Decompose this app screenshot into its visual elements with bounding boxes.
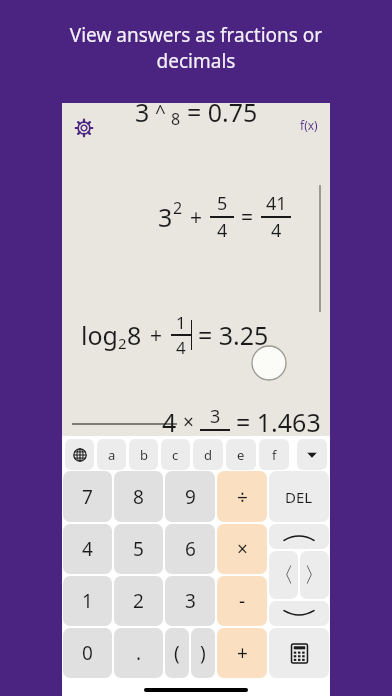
button[interactable]: × bbox=[217, 524, 267, 574]
staticText: d bbox=[204, 446, 212, 464]
staticText: = 1.463 bbox=[236, 405, 321, 439]
button[interactable]: f(x) bbox=[296, 115, 322, 135]
staticText: 4 bbox=[82, 536, 93, 562]
staticText: f(x) bbox=[300, 117, 318, 133]
staticText: 1 bbox=[176, 311, 186, 334]
staticText: 2 bbox=[173, 197, 183, 219]
staticText: 6 bbox=[185, 536, 196, 562]
button[interactable]: 6 bbox=[165, 524, 215, 574]
button[interactable]: 1 bbox=[63, 576, 112, 626]
staticText: e bbox=[237, 446, 245, 464]
staticText: 3 bbox=[135, 95, 150, 129]
staticText: f bbox=[272, 446, 277, 464]
button[interactable]: . bbox=[114, 628, 163, 678]
staticText: 0 bbox=[82, 640, 93, 666]
button[interactable]: e bbox=[226, 439, 256, 470]
button[interactable]: + bbox=[217, 628, 267, 678]
staticText: 8.2 bbox=[202, 431, 228, 440]
staticText: = 0.75 bbox=[187, 95, 258, 129]
button[interactable]: Scroll up bbox=[269, 524, 329, 549]
staticText: + bbox=[237, 640, 248, 666]
button[interactable]: ÷ bbox=[217, 471, 267, 522]
staticText: a bbox=[108, 446, 116, 464]
staticText: DEL bbox=[285, 487, 313, 507]
staticText: × bbox=[237, 536, 248, 562]
staticText: 7 bbox=[82, 484, 93, 510]
staticText: 1 bbox=[82, 588, 93, 614]
staticText: - bbox=[239, 588, 246, 614]
button[interactable]: Settings bbox=[72, 116, 96, 140]
button[interactable]: 9 bbox=[165, 471, 215, 522]
button[interactable]: Scroll down bbox=[269, 601, 329, 626]
staticText: 9 bbox=[185, 484, 196, 510]
staticText: 8 bbox=[133, 484, 144, 510]
staticText: c bbox=[172, 446, 179, 464]
staticText: × bbox=[183, 409, 194, 435]
button[interactable]: Move right bbox=[300, 551, 329, 599]
staticText: = 3.25 bbox=[198, 318, 269, 352]
staticText: + bbox=[190, 203, 203, 232]
button[interactable] bbox=[297, 439, 327, 470]
button[interactable]: d bbox=[193, 439, 223, 470]
button[interactable]: Cursor handle bbox=[251, 345, 287, 381]
staticText: 〈 bbox=[273, 562, 294, 588]
staticText: 2 bbox=[118, 333, 127, 353]
staticText: 4 bbox=[162, 405, 177, 439]
staticText: 4 bbox=[271, 218, 282, 243]
button[interactable]: c bbox=[161, 439, 190, 470]
staticText: 〉 bbox=[304, 562, 325, 588]
staticText: 3 bbox=[158, 200, 173, 234]
staticText: b bbox=[140, 446, 148, 464]
button[interactable] bbox=[65, 439, 94, 470]
button[interactable]: Calculator bbox=[269, 628, 329, 678]
button[interactable]: - bbox=[217, 576, 267, 626]
staticText: ) bbox=[200, 640, 206, 666]
staticText: log bbox=[81, 318, 118, 352]
staticText: View answers as fractions or decimals bbox=[28, 22, 364, 74]
staticText: + bbox=[150, 321, 163, 350]
staticText: 5 bbox=[133, 536, 144, 562]
button[interactable]: 8 bbox=[114, 471, 163, 522]
staticText: 4 bbox=[176, 336, 186, 359]
button[interactable]: 4 bbox=[63, 524, 112, 574]
staticText: 5 bbox=[217, 191, 228, 216]
staticText: . bbox=[136, 640, 142, 666]
staticText: 41 bbox=[266, 191, 287, 216]
button[interactable]: f bbox=[259, 439, 289, 470]
staticText: ÷ bbox=[237, 484, 248, 510]
button[interactable]: 0 bbox=[63, 628, 112, 678]
button[interactable]: 2 bbox=[114, 576, 163, 626]
button[interactable]: 7 bbox=[63, 471, 112, 522]
button[interactable]: a bbox=[97, 439, 126, 470]
staticText: ( bbox=[174, 640, 180, 666]
button[interactable]: 3 bbox=[165, 576, 215, 626]
button[interactable]: 5 bbox=[114, 524, 163, 574]
staticText: 3 bbox=[210, 404, 221, 429]
staticText: ^ bbox=[155, 99, 166, 125]
staticText: 3 bbox=[185, 588, 196, 614]
staticText: 8 bbox=[171, 108, 181, 130]
button[interactable]: b bbox=[129, 439, 158, 470]
staticText: 2 bbox=[133, 588, 144, 614]
button[interactable]: ( bbox=[165, 628, 189, 678]
button[interactable]: ) bbox=[191, 628, 215, 678]
button[interactable]: Move left bbox=[269, 551, 298, 599]
button[interactable]: DEL bbox=[269, 471, 329, 522]
staticText: = bbox=[241, 203, 254, 232]
staticText: 4 bbox=[217, 218, 228, 243]
staticText: 8 bbox=[127, 318, 142, 352]
